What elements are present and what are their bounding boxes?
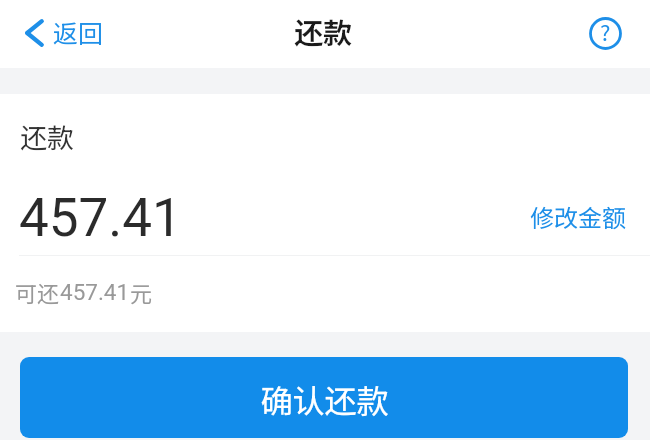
staticText: 可还 bbox=[15, 276, 60, 308]
staticText: 元 bbox=[130, 276, 153, 308]
button[interactable]: 确认还款 bbox=[20, 357, 628, 438]
staticText: 还款 bbox=[294, 10, 353, 52]
staticText: 修改金额 bbox=[530, 199, 626, 234]
staticText: 457.41 bbox=[60, 279, 130, 305]
button[interactable]: Help bbox=[583, 11, 627, 55]
staticText: 还款 bbox=[20, 117, 74, 156]
staticText: ? bbox=[600, 15, 611, 47]
staticText: 返回 bbox=[53, 14, 104, 50]
staticText: 457.41 bbox=[19, 187, 182, 249]
button[interactable]: 返回 bbox=[24, 16, 104, 52]
staticText: 确认还款 bbox=[260, 376, 389, 422]
button[interactable]: 修改金额 bbox=[526, 195, 630, 238]
